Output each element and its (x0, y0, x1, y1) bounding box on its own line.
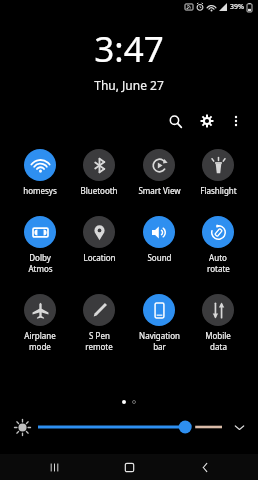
staticText: Navigation (139, 330, 180, 341)
button[interactable]: Smart View (131, 148, 187, 197)
button[interactable]: Airplane (12, 293, 68, 353)
staticText: mode (29, 341, 51, 352)
staticText: Thu, June 27 (94, 77, 164, 93)
staticText: 39% (230, 2, 244, 12)
staticText: Bluetooth (80, 185, 118, 196)
button[interactable]: Flashlight (190, 148, 246, 197)
staticText: bar (153, 341, 166, 352)
button[interactable]: Recents (32, 454, 76, 480)
staticText: 3:47 (94, 25, 164, 73)
button[interactable]: Dolby (12, 215, 68, 275)
button[interactable]: Search (162, 108, 188, 134)
staticText: Auto (209, 252, 227, 263)
button[interactable]: homesys (12, 148, 68, 197)
staticText: Sound (147, 252, 172, 263)
staticText: homesys (23, 185, 57, 196)
staticText: Smart View (138, 185, 181, 196)
button[interactable]: Mobile (190, 293, 246, 353)
button[interactable]: Home (107, 454, 151, 480)
staticText: S Pen (89, 330, 110, 341)
button[interactable]: Bluetooth (71, 148, 127, 197)
button[interactable]: Navigation (131, 293, 187, 353)
staticText: Mobile (205, 330, 231, 341)
staticText: Airplane (24, 330, 56, 341)
staticText: Atmos (28, 263, 53, 274)
staticText: rotate (207, 263, 230, 274)
staticText: data (210, 341, 227, 352)
staticText: remote (85, 341, 113, 352)
button[interactable]: More options (224, 109, 248, 133)
button[interactable]: Brightness (38, 415, 222, 439)
button[interactable]: Expand brightness settings (228, 416, 250, 438)
button[interactable]: Auto (190, 215, 246, 275)
button[interactable]: S Pen (71, 293, 127, 353)
staticText: Flashlight (200, 185, 237, 196)
button[interactable]: Sound (131, 215, 187, 264)
button[interactable]: Location (71, 215, 127, 264)
staticText: Location (83, 252, 116, 263)
button[interactable]: Settings (194, 108, 220, 134)
staticText: Dolby (29, 252, 51, 263)
button[interactable]: Back (183, 454, 227, 480)
